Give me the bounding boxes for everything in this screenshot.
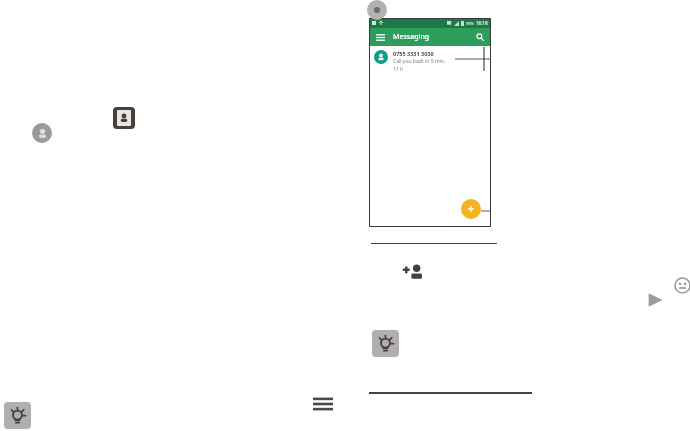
button[interactable]: Tip <box>372 330 399 357</box>
staticText: Call you back in 5 min. <box>393 58 446 65</box>
button[interactable]: Emoji <box>674 277 690 294</box>
button[interactable]: Search <box>474 31 486 43</box>
button[interactable]: Settings <box>367 0 387 20</box>
staticText: 16:18 <box>476 20 488 26</box>
button[interactable]: Open navigation drawer <box>374 31 386 43</box>
button[interactable]: Menu <box>313 396 333 412</box>
button[interactable]: Send <box>645 290 665 310</box>
button[interactable]: Contact <box>32 123 52 143</box>
button[interactable]: Tip <box>4 402 31 429</box>
button[interactable]: 0755 3331 3030 <box>369 46 491 76</box>
staticText: 17 h <box>393 66 404 73</box>
staticText: 0755 3331 3030 <box>393 50 434 57</box>
button[interactable]: Contact card <box>113 107 135 129</box>
staticText: Messaging <box>393 32 430 42</box>
button[interactable]: New conversation <box>461 199 481 219</box>
staticText: 99% <box>466 21 474 26</box>
button[interactable]: Add contact <box>403 261 425 283</box>
